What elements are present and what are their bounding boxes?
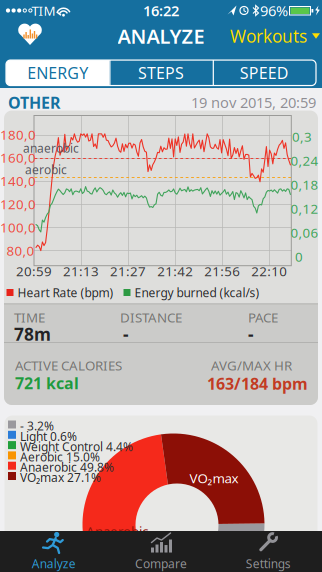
staticText: SPEED: [240, 62, 289, 83]
staticText: 21:27: [110, 262, 146, 280]
button[interactable]: Compare: [107, 531, 214, 571]
button[interactable]: Workouts: [230, 24, 320, 47]
staticText: 21:13: [63, 262, 99, 280]
button[interactable]: STEPS: [109, 60, 213, 85]
staticText: Aerobic 15.0%: [20, 449, 100, 465]
button[interactable]: ENERGY: [6, 60, 109, 85]
staticText: Anaerobic: [86, 522, 148, 540]
staticText: Anaerobic 49.8%: [20, 459, 114, 475]
staticText: 19 nov 2015, 20:59: [191, 92, 316, 112]
staticText: 16:22: [143, 1, 179, 20]
staticText: 0,12: [290, 200, 318, 217]
staticText: 22:10: [251, 262, 287, 280]
button[interactable]: Heart logo: [15, 22, 45, 48]
staticText: 80,0: [6, 242, 34, 259]
staticText: 721 kcal: [15, 372, 79, 394]
staticText: 0: [295, 248, 303, 265]
button[interactable]: Analyze: [0, 531, 107, 571]
button[interactable]: SPEED: [213, 60, 316, 85]
staticText: 20:59: [16, 262, 52, 280]
staticText: -: [248, 322, 254, 345]
staticText: Settings: [246, 555, 291, 571]
staticText: STEPS: [138, 62, 184, 83]
staticText: ACTIVE CALORIES: [15, 356, 122, 374]
staticText: aerobic: [25, 161, 67, 177]
staticText: Compare: [135, 555, 187, 571]
staticText: VO₂max: [189, 469, 238, 487]
staticText: Light 0.6%: [20, 428, 77, 444]
staticText: 78m: [14, 322, 51, 345]
staticText: 21:56: [204, 262, 240, 280]
staticText: - 3.2%: [20, 418, 54, 434]
staticText: 21:42: [157, 262, 193, 280]
staticText: OTHER: [8, 92, 60, 113]
staticText: anaerobic: [23, 140, 79, 156]
staticText: -: [123, 322, 129, 345]
staticText: 160,0: [0, 149, 36, 166]
staticText: DISTANCE: [120, 308, 182, 326]
staticText: Analyze: [32, 555, 76, 571]
staticText: PACE: [248, 308, 278, 326]
staticText: 100,0: [0, 218, 36, 236]
staticText: 163/184 bpm: [207, 373, 308, 394]
staticText: TIME: [14, 308, 45, 326]
staticText: Energy burned (kcal/s): [134, 284, 259, 300]
staticText: TIM: [31, 2, 55, 19]
staticText: 120,0: [0, 195, 36, 213]
staticText: VO₂max 27.1%: [20, 469, 101, 485]
staticText: AVG/MAX HR: [211, 356, 292, 374]
staticText: 0,24: [290, 152, 318, 169]
staticText: 0,3: [292, 128, 312, 145]
staticText: 180,0: [0, 126, 36, 143]
staticText: 0,06: [290, 224, 318, 241]
staticText: 140,0: [0, 172, 36, 190]
staticText: Workouts: [230, 24, 307, 47]
staticText: ENERGY: [27, 62, 88, 83]
staticText: Weight Control 4.4%: [20, 439, 133, 454]
staticText: 96%: [260, 1, 288, 20]
staticText: 0,18: [290, 176, 318, 193]
staticText: ANALYZE: [117, 23, 204, 49]
button[interactable]: Settings: [215, 531, 322, 571]
staticText: Heart Rate (bpm): [17, 284, 113, 300]
